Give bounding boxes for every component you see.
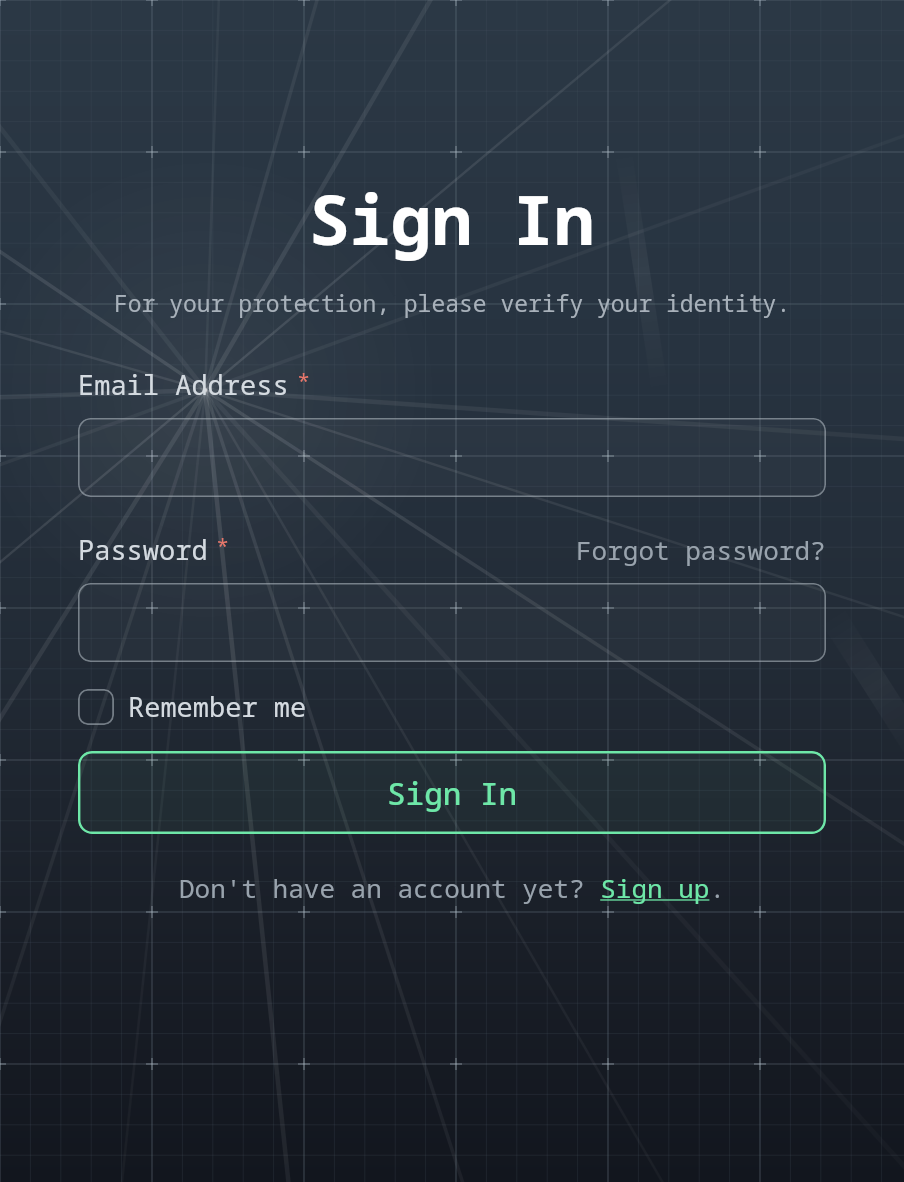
button[interactable] [78,583,826,662]
button[interactable]: Forgot password? [576,532,826,567]
staticText: Sign In [309,172,595,265]
staticText: Email Address [78,366,289,403]
staticText: * [297,366,311,396]
button[interactable]: Don't have an account yet? Sign up. [179,870,726,905]
button[interactable]: Sign In [78,751,826,834]
staticText: * [216,531,230,561]
staticText: Remember me [128,688,307,725]
button[interactable]: Remember me [78,688,307,725]
button[interactable] [78,418,826,497]
staticText: Password [78,531,208,568]
staticText: Sign In [387,772,518,814]
staticText: For your protection, please verify your … [114,287,791,318]
staticText: Don't have an account yet? Sign up. [179,870,726,905]
staticText: Forgot password? [576,532,826,567]
